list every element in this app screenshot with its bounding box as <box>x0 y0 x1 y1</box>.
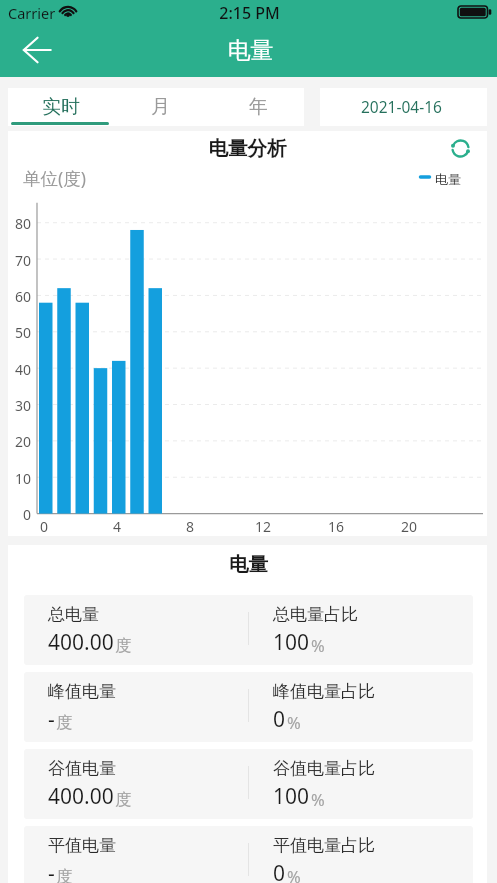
staticText: 单位(度) <box>23 166 86 190</box>
staticText: 月 <box>151 95 170 119</box>
staticText: 总电量占比 <box>273 604 358 625</box>
staticText: 60 <box>0 287 31 306</box>
staticText: 10 <box>0 469 31 488</box>
button[interactable]: Refresh <box>446 134 475 163</box>
staticText: 电量 <box>435 171 461 187</box>
staticText: 0 <box>273 705 286 734</box>
staticText: 4 <box>105 517 129 536</box>
staticText: 谷值电量占比 <box>273 758 375 779</box>
staticText: 100 <box>273 782 310 811</box>
staticText: 20 <box>397 517 421 536</box>
staticText: 电量 <box>0 552 497 577</box>
staticText: 20 <box>0 432 31 451</box>
staticText: 度 <box>115 789 132 810</box>
staticText: 8 <box>178 517 202 536</box>
staticText: 0 <box>32 517 56 536</box>
staticText: 实时 <box>42 95 80 119</box>
staticText: % <box>287 865 301 883</box>
button[interactable]: Back <box>17 30 57 70</box>
staticText: 400.00 <box>48 628 114 657</box>
button[interactable]: 平值电量 <box>24 826 473 883</box>
staticText: 峰值电量 <box>48 681 116 702</box>
staticText: 2021-04-16 <box>361 96 442 117</box>
button[interactable]: 年 <box>212 88 304 126</box>
staticText: 度 <box>115 635 132 656</box>
button[interactable]: 2021-04-16 <box>318 87 485 125</box>
staticText: 平值电量 <box>48 835 116 856</box>
button[interactable]: 谷值电量 <box>24 749 473 819</box>
staticText: 12 <box>251 517 275 536</box>
staticText: % <box>287 711 301 733</box>
button[interactable]: 总电量 <box>24 595 473 665</box>
button[interactable]: 峰值电量 <box>24 672 473 742</box>
staticText: 峰值电量占比 <box>273 681 375 702</box>
staticText: 30 <box>0 396 31 415</box>
staticText: 0 <box>273 859 286 883</box>
staticText: 平值电量占比 <box>273 835 375 856</box>
staticText: 50 <box>0 323 31 342</box>
staticText: 年 <box>249 95 268 119</box>
staticText: 2:15 PM <box>1 2 497 24</box>
button[interactable]: 实时 <box>8 88 114 126</box>
staticText: 70 <box>0 251 31 270</box>
button[interactable]: 月 <box>114 88 206 126</box>
staticText: 电量分析 <box>0 136 496 161</box>
staticText: 100 <box>273 628 310 657</box>
staticText: % <box>311 634 325 656</box>
staticText: % <box>311 788 325 810</box>
staticText: 度 <box>56 866 73 883</box>
staticText: 16 <box>324 517 348 536</box>
staticText: 400.00 <box>48 782 114 811</box>
staticText: - <box>48 859 55 883</box>
staticText: 0 <box>0 505 31 524</box>
staticText: 80 <box>0 214 31 233</box>
staticText: 度 <box>56 712 73 733</box>
staticText: 40 <box>0 360 31 379</box>
staticText: Carrier <box>8 3 56 23</box>
staticText: 电量 <box>2 36 497 65</box>
staticText: 总电量 <box>48 604 99 625</box>
staticText: 谷值电量 <box>48 758 116 779</box>
staticText: - <box>48 705 55 734</box>
